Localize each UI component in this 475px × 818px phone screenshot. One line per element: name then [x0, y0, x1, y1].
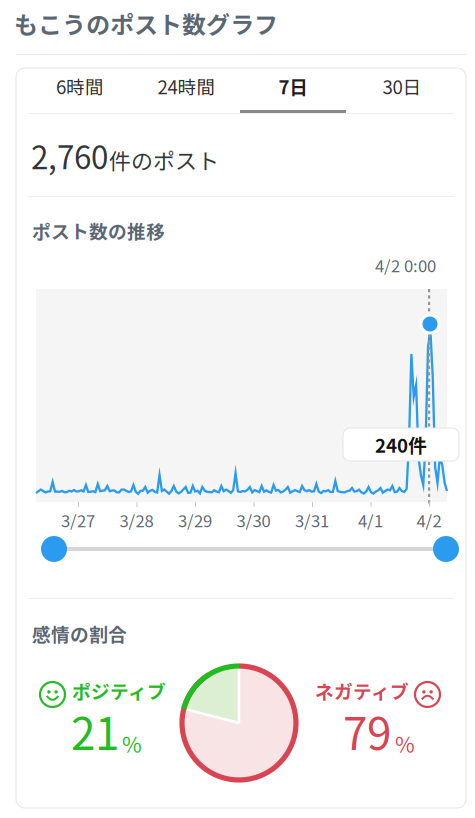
- staticText: 30日: [382, 72, 421, 99]
- staticText: 3/30: [236, 508, 270, 532]
- staticText: 240件: [375, 431, 427, 458]
- staticText: ポスト数の推移: [32, 217, 165, 244]
- staticText: 感情の割合: [32, 620, 127, 647]
- staticText: 3/29: [178, 508, 212, 532]
- staticText: 4/2 0:00: [375, 253, 436, 277]
- button[interactable]: 24時間: [130, 69, 242, 114]
- staticText: 3/31: [295, 508, 329, 532]
- staticText: 4/1: [358, 508, 383, 532]
- staticText: 3/27: [61, 508, 95, 532]
- staticText: ポジティブ: [72, 677, 166, 704]
- staticText: 件のポスト: [109, 144, 219, 176]
- staticText: 7日: [278, 72, 308, 99]
- staticText: 3/28: [119, 508, 153, 532]
- staticText: 4/2: [416, 508, 441, 532]
- staticText: %: [395, 728, 415, 759]
- button[interactable]: 30日: [346, 69, 458, 114]
- staticText: ネガティブ: [315, 677, 409, 704]
- staticText: 6時間: [56, 72, 104, 99]
- button[interactable]: 7日: [237, 69, 349, 114]
- staticText: 24時間: [157, 72, 215, 99]
- staticText: 79: [343, 699, 391, 763]
- staticText: 21: [71, 699, 119, 763]
- button[interactable]: 6時間: [24, 69, 136, 114]
- staticText: もこうのポスト数グラフ: [14, 6, 278, 41]
- staticText: 2,760: [31, 133, 108, 178]
- staticText: %: [122, 728, 142, 759]
